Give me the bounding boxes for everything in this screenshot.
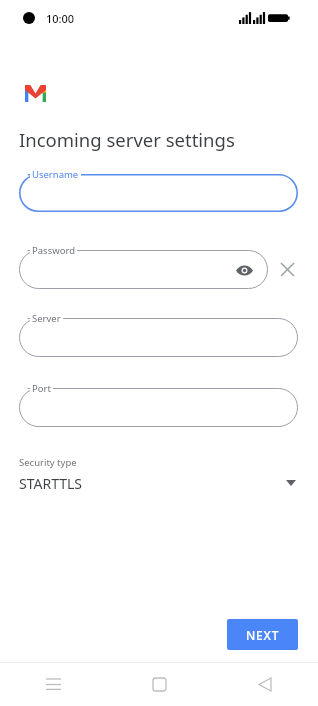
staticText: Server (32, 312, 61, 325)
staticText: 10:00 (46, 11, 75, 26)
staticText: NEXT (246, 627, 280, 643)
button[interactable]: Home (106, 662, 212, 706)
staticText: Port (32, 382, 51, 395)
button[interactable]: NEXT (227, 619, 298, 650)
button[interactable]: Port (19, 388, 298, 427)
button[interactable]: Security type (19, 452, 298, 498)
staticText: STARTTLS (19, 474, 83, 493)
button[interactable]: Server (19, 318, 298, 357)
staticText: Password (32, 244, 75, 257)
staticText: Username (32, 168, 79, 181)
button[interactable]: Password (19, 250, 268, 289)
button[interactable]: Show password (232, 258, 256, 282)
button[interactable]: Recent apps (0, 662, 106, 706)
staticText: Incoming server settings (19, 127, 235, 152)
button[interactable]: Clear password (274, 256, 301, 283)
staticText: Security type (19, 456, 77, 469)
button[interactable]: Back (212, 662, 318, 706)
button[interactable]: Username (19, 174, 298, 212)
